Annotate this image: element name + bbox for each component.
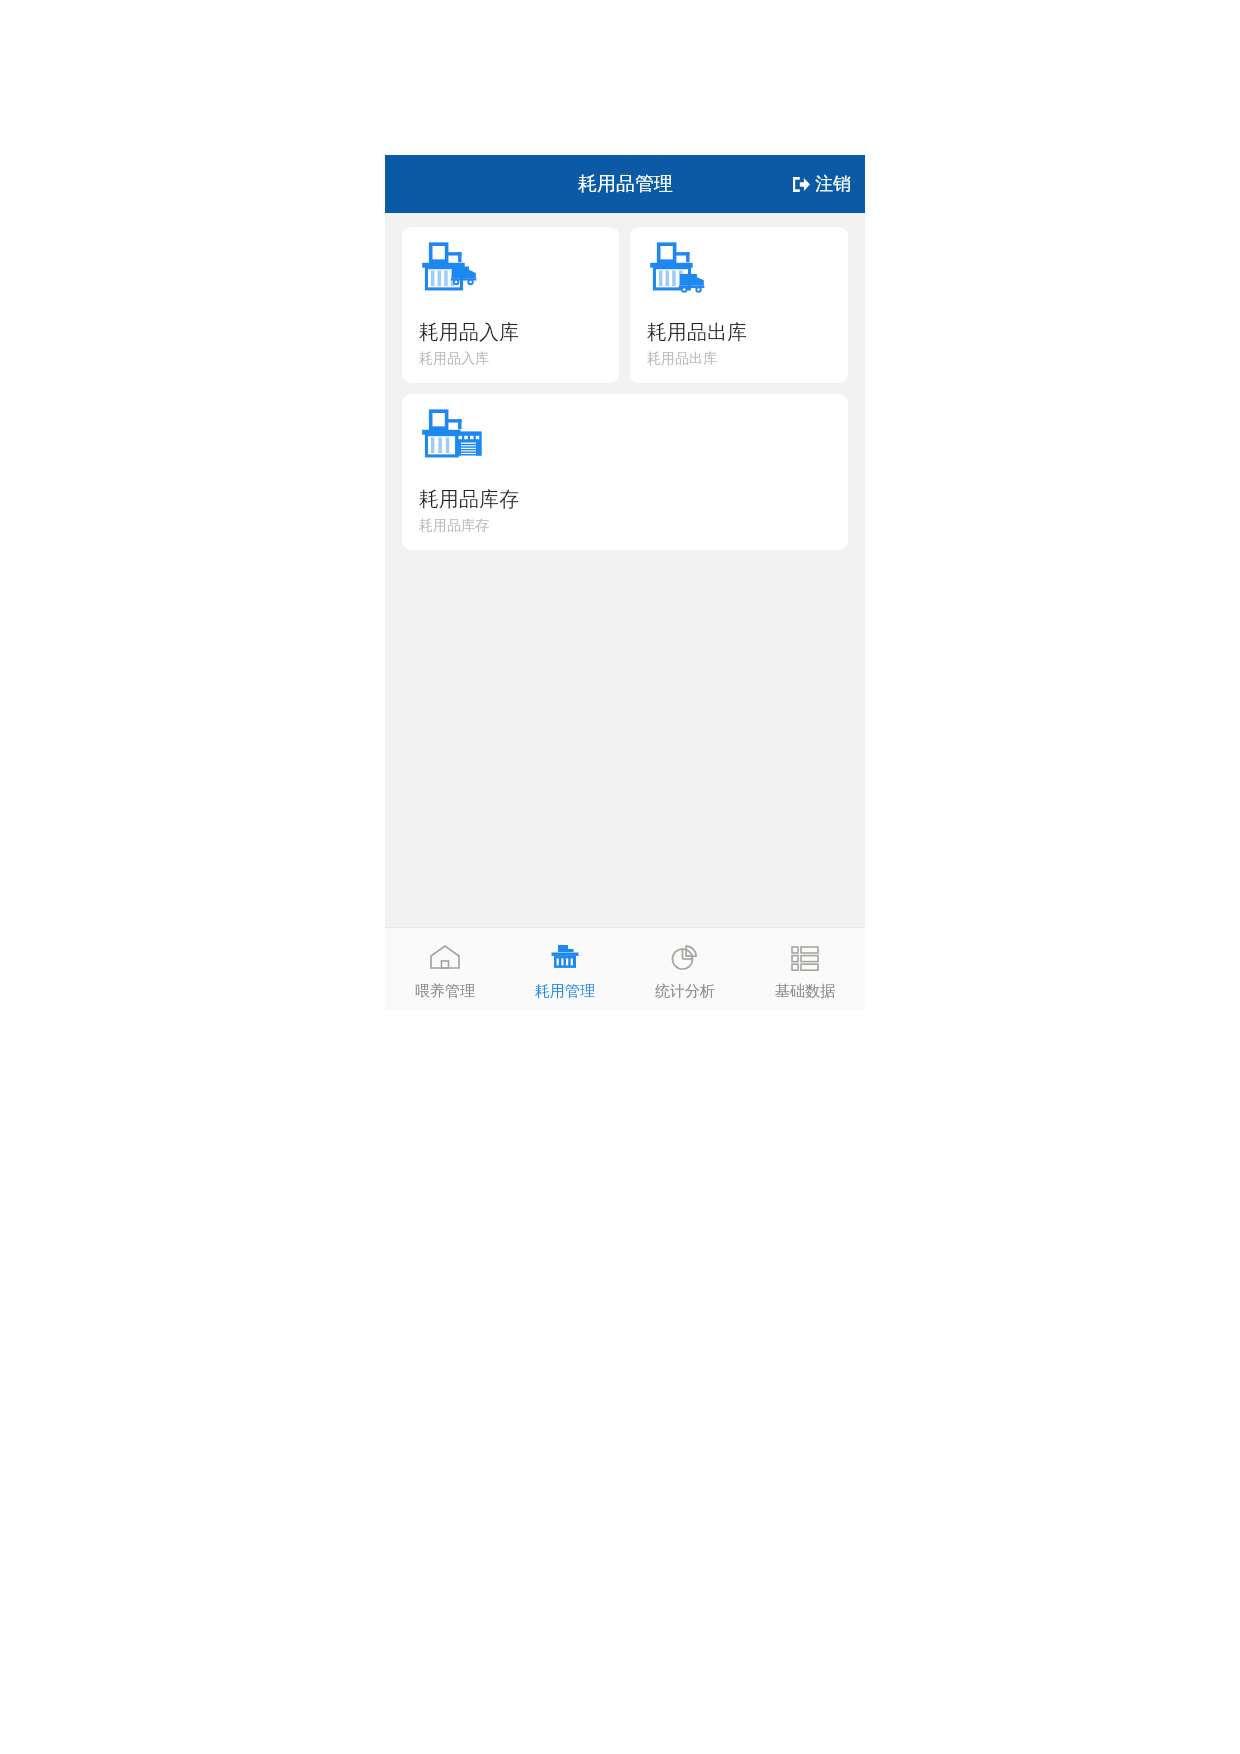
staticText: 基础数据 [775,982,835,1001]
button[interactable]: 耗用品库存 [402,394,848,550]
other: 注销 [793,176,810,193]
other: 统计分析 [668,941,702,975]
button[interactable]: 耗用品出库 [630,227,848,383]
other: 基础数据 [788,941,822,975]
other: 喂养管理 [428,941,462,975]
button[interactable]: 喂养管理 [385,928,505,1010]
staticText: 耗用品库存 [419,487,519,512]
button[interactable]: 统计分析 [625,928,745,1010]
staticText: 喂养管理 [415,982,475,1001]
staticText: 耗用品库存 [419,517,489,535]
staticText: 耗用品出库 [647,320,747,345]
staticText: 耗用品入库 [419,320,519,345]
staticText: 耗用品出库 [647,350,717,368]
button[interactable]: 基础数据 [745,928,865,1010]
button[interactable]: 耗用品入库 [402,227,619,383]
button[interactable]: 注销 [787,165,857,204]
button[interactable]: 耗用管理 [505,928,625,1010]
other: 耗用管理 [548,941,582,975]
staticText: 统计分析 [655,982,715,1001]
staticText: 注销 [815,173,851,196]
staticText: 耗用管理 [535,982,595,1001]
staticText: 耗用品管理 [578,172,673,196]
staticText: 耗用品入库 [419,350,489,368]
